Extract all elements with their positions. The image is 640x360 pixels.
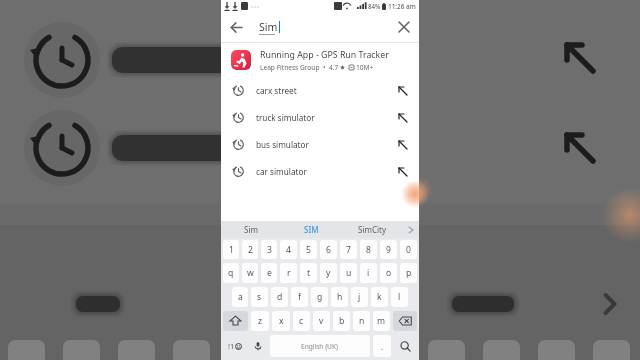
button[interactable]: . bbox=[373, 335, 391, 357]
button[interactable]: 8 bbox=[360, 240, 377, 259]
staticText: SIM bbox=[304, 224, 319, 235]
staticText: n bbox=[359, 315, 365, 327]
staticText: 10M+ bbox=[356, 63, 374, 72]
button[interactable]: truck simulator bbox=[221, 104, 419, 131]
staticText: Running App - GPS Run Tracker bbox=[260, 49, 389, 61]
button[interactable]: m bbox=[373, 311, 390, 331]
other: Insert suggestion bbox=[399, 87, 407, 95]
staticText: 6 bbox=[326, 244, 331, 256]
staticText: a bbox=[238, 291, 243, 303]
button[interactable]: i bbox=[360, 263, 377, 283]
staticText: SimCity bbox=[358, 224, 387, 235]
staticText: e bbox=[267, 267, 272, 279]
staticText: Leap Fitness Group bbox=[260, 63, 320, 72]
button[interactable]: x bbox=[272, 311, 290, 331]
staticText: s bbox=[257, 291, 262, 303]
staticText: i bbox=[367, 267, 370, 279]
button[interactable]: d bbox=[271, 287, 288, 307]
button[interactable]: k bbox=[371, 287, 388, 307]
button[interactable]: l bbox=[391, 287, 408, 307]
button[interactable]: Sim bbox=[221, 221, 281, 238]
button[interactable]: SimCity bbox=[342, 221, 403, 238]
button[interactable]: SIM bbox=[281, 221, 342, 238]
button[interactable]: 4 bbox=[280, 240, 297, 259]
button[interactable]: 5 bbox=[300, 240, 317, 259]
staticText: 11:26 am bbox=[388, 2, 416, 11]
staticText: 1 bbox=[229, 244, 234, 256]
button[interactable]: 7 bbox=[340, 240, 357, 259]
button[interactable]: 0 bbox=[400, 240, 417, 259]
button[interactable]: More suggestions bbox=[403, 221, 419, 238]
staticText: 4 bbox=[286, 244, 291, 256]
button[interactable]: h bbox=[331, 287, 348, 307]
staticText: !1 bbox=[228, 341, 235, 351]
staticText: m bbox=[377, 315, 386, 327]
button[interactable]: n bbox=[353, 311, 370, 331]
staticText: 3 bbox=[267, 244, 272, 256]
staticText: 2 bbox=[248, 244, 253, 256]
button[interactable]: u bbox=[340, 263, 357, 283]
button[interactable]: v bbox=[313, 311, 330, 331]
staticText: q bbox=[228, 267, 234, 279]
button[interactable]: c bbox=[293, 311, 310, 331]
button[interactable]: Search bbox=[394, 335, 417, 357]
staticText: r bbox=[287, 267, 291, 279]
staticText: u bbox=[346, 267, 352, 279]
staticText: • bbox=[323, 63, 326, 72]
staticText: c bbox=[299, 315, 304, 327]
staticText: English (UK) bbox=[301, 342, 339, 351]
button[interactable]: j bbox=[351, 287, 368, 307]
staticText: bus simulator bbox=[256, 139, 309, 150]
other: Insert suggestion bbox=[399, 168, 407, 176]
button[interactable]: s bbox=[251, 287, 268, 307]
button[interactable]: Clear search bbox=[389, 12, 419, 42]
button[interactable]: English (UK) bbox=[270, 335, 370, 357]
staticText: 84% bbox=[368, 2, 381, 10]
staticText: carx street bbox=[256, 85, 297, 96]
button[interactable]: carx street bbox=[221, 77, 419, 104]
button[interactable]: bus simulator bbox=[221, 131, 419, 158]
staticText: f bbox=[298, 291, 301, 303]
button[interactable]: car simulator bbox=[221, 158, 419, 185]
button[interactable]: b bbox=[333, 311, 350, 331]
staticText: truck simulator bbox=[256, 112, 315, 123]
button[interactable]: 6 bbox=[320, 240, 337, 259]
button[interactable]: !1 bbox=[223, 335, 246, 357]
button[interactable]: e bbox=[261, 263, 277, 283]
button[interactable]: r bbox=[280, 263, 297, 283]
button[interactable]: o bbox=[380, 263, 397, 283]
button[interactable]: Sim bbox=[251, 12, 389, 42]
button[interactable]: Running App - GPS Run Tracker bbox=[221, 43, 419, 77]
button[interactable]: a bbox=[232, 287, 248, 307]
button[interactable]: 2 bbox=[242, 240, 258, 259]
staticText: l bbox=[398, 291, 401, 303]
button[interactable]: z bbox=[251, 311, 269, 331]
staticText: 4.7 bbox=[329, 63, 339, 72]
button[interactable]: Voice input bbox=[249, 335, 267, 357]
staticText: p bbox=[406, 267, 412, 279]
staticText: 8 bbox=[366, 244, 371, 256]
button[interactable]: 9 bbox=[380, 240, 397, 259]
button[interactable]: 1 bbox=[223, 240, 239, 259]
staticText: 5 bbox=[306, 244, 311, 256]
button[interactable]: g bbox=[311, 287, 328, 307]
button[interactable]: w bbox=[242, 263, 258, 283]
button[interactable]: q bbox=[223, 263, 239, 283]
button[interactable]: p bbox=[400, 263, 417, 283]
staticText: x bbox=[279, 315, 284, 327]
staticText: 0 bbox=[406, 244, 411, 256]
button[interactable]: Shift bbox=[223, 311, 248, 331]
button[interactable]: t bbox=[300, 263, 317, 283]
button[interactable]: Backspace bbox=[393, 311, 417, 331]
button[interactable]: Back bbox=[221, 12, 251, 42]
button[interactable]: y bbox=[320, 263, 337, 283]
staticText: o bbox=[386, 267, 392, 279]
button[interactable]: f bbox=[291, 287, 308, 307]
staticText: g bbox=[317, 291, 323, 303]
staticText: 9 bbox=[386, 244, 391, 256]
staticText: w bbox=[247, 267, 254, 279]
staticText: v bbox=[319, 315, 324, 327]
button[interactable]: 3 bbox=[261, 240, 277, 259]
staticText: Sim bbox=[259, 20, 278, 34]
staticText: j bbox=[358, 291, 361, 303]
